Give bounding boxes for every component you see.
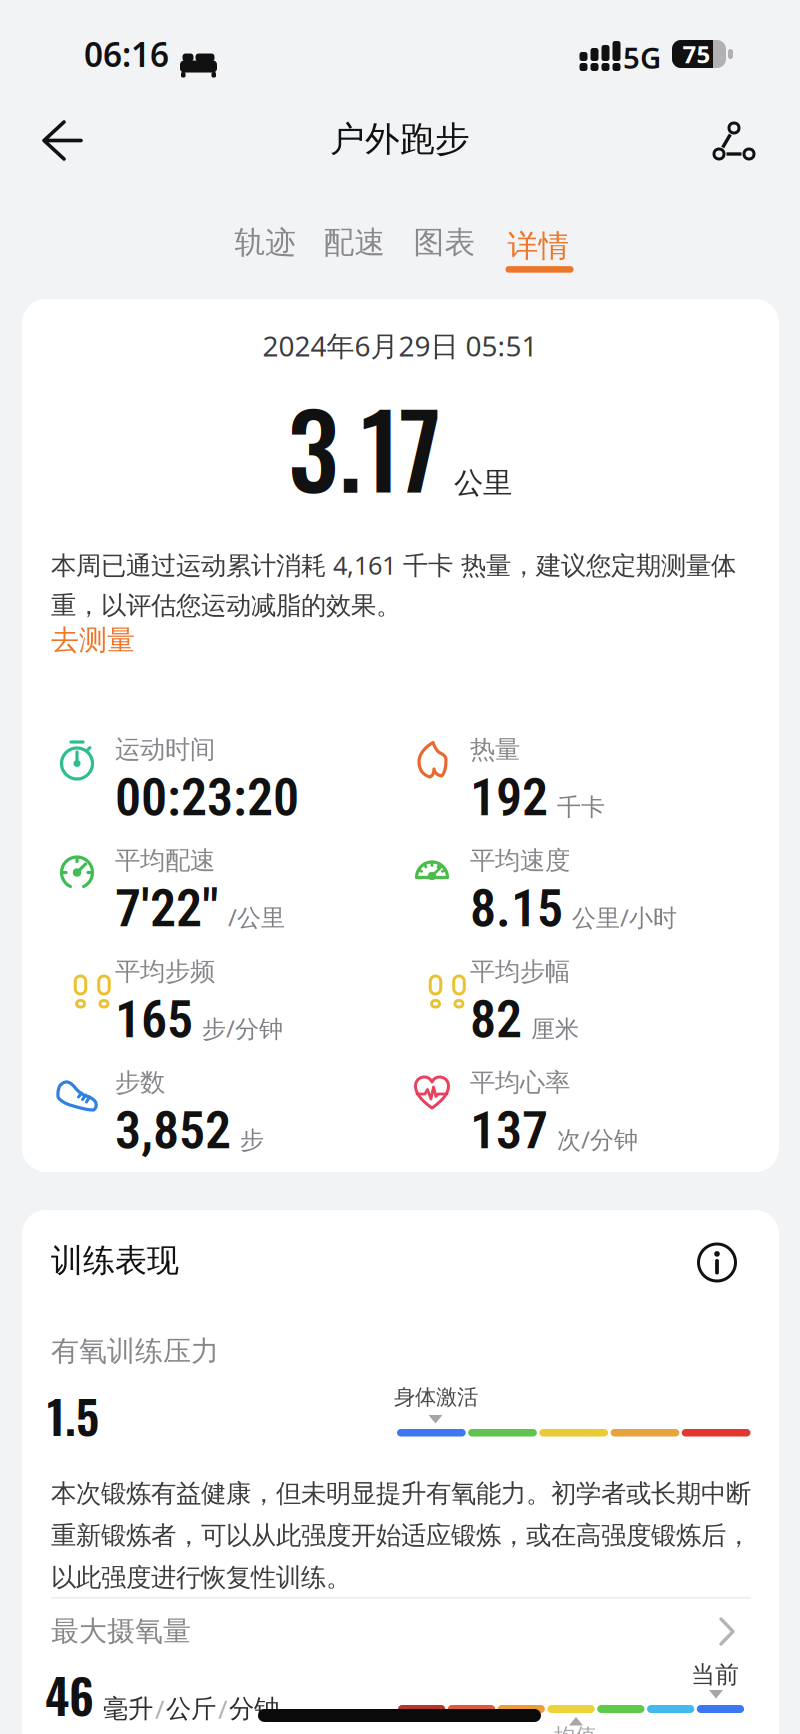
staticText: 公斤	[166, 1693, 216, 1724]
staticText: 训练表现	[51, 1241, 179, 1280]
staticText: 重新锻炼者，可以从此强度开始适应锻炼，或在高强度锻炼后，	[51, 1520, 751, 1551]
staticText: 5G	[623, 38, 661, 77]
staticText: 步数	[115, 1067, 165, 1098]
staticText: 详情	[507, 227, 569, 265]
staticText: 46	[45, 1660, 94, 1730]
staticText: 重，以评估您运动减脂的效果。	[51, 590, 401, 621]
staticText: 以此强度进行恢复性训练。	[51, 1562, 351, 1593]
staticText: 平均步幅	[470, 956, 570, 987]
staticText: 步/分钟	[202, 1012, 283, 1044]
staticText: 82	[470, 989, 522, 1050]
staticText: /	[218, 1692, 227, 1726]
staticText: 去测量	[51, 623, 135, 657]
staticText: 运动时间	[115, 734, 215, 765]
button[interactable]: 最大摄氧量	[51, 1608, 751, 1654]
button[interactable]: 去测量	[51, 623, 135, 657]
staticText: /公里	[228, 901, 285, 933]
staticText: 1.5	[47, 1381, 99, 1449]
staticText: 平均心率	[470, 1067, 570, 1098]
staticText: 3,852	[115, 1100, 231, 1161]
button[interactable]: 图表	[413, 224, 475, 261]
button[interactable]: 返回	[33, 110, 93, 170]
staticText: 身体激活	[394, 1384, 478, 1410]
staticText: 75	[682, 38, 710, 70]
staticText: /	[155, 1692, 164, 1726]
staticText: 165	[115, 989, 193, 1050]
staticText: 公里	[454, 465, 512, 501]
staticText: 千卡	[557, 792, 605, 822]
staticText: 3.17	[288, 371, 441, 522]
staticText: 当前	[691, 1660, 739, 1689]
staticText: 7'22"	[115, 878, 219, 939]
staticText: 厘米	[531, 1014, 579, 1044]
button[interactable]: 配速	[323, 224, 385, 261]
staticText: 次/分钟	[557, 1123, 638, 1155]
staticText: 本次锻炼有益健康，但未明显提升有氧能力。初学者或长期中断	[51, 1478, 751, 1509]
button[interactable]: 详情	[507, 227, 575, 265]
staticText: 00:23:20	[115, 767, 299, 828]
button[interactable]: 轨迹分享	[704, 111, 764, 171]
staticText: 平均步频	[115, 956, 215, 987]
staticText: 最大摄氧量	[51, 1614, 191, 1648]
staticText: 轨迹	[234, 224, 296, 261]
staticText: 配速	[323, 224, 385, 261]
staticText: 2024年6月29日 05:51	[262, 327, 537, 364]
staticText: 192	[470, 767, 548, 828]
staticText: 图表	[413, 224, 475, 261]
staticText: 06:16	[84, 32, 169, 76]
staticText: 热量	[470, 734, 520, 765]
staticText: 户外跑步	[330, 118, 470, 161]
staticText: 公里/小时	[572, 901, 677, 933]
staticText: 均值	[554, 1723, 596, 1734]
staticText: 有氧训练压力	[51, 1334, 219, 1368]
staticText: 8.15	[470, 878, 563, 939]
staticText: 137	[470, 1100, 548, 1161]
button[interactable]: 轨迹	[234, 224, 296, 261]
staticText: 平均配速	[115, 845, 215, 876]
staticText: 分钟	[229, 1693, 279, 1724]
staticText: 步	[240, 1125, 264, 1155]
staticText: 平均速度	[470, 845, 570, 876]
staticText: 本周已通过运动累计消耗 4,161 千卡 热量，建议您定期测量体	[51, 548, 736, 582]
staticText: 毫升	[103, 1693, 153, 1724]
button[interactable]: 训练表现说明	[697, 1242, 737, 1282]
